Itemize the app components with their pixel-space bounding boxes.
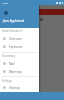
- button[interactable]: Mail: [0, 60, 39, 67]
- button[interactable]: Warnings: [0, 68, 39, 75]
- staticText: 12:30: [2, 1, 9, 4]
- staticText: Radio Standard 1: [2, 29, 23, 33]
- staticText: Jane Appleseed: [3, 19, 25, 23]
- staticText: Secondary: [2, 54, 15, 58]
- staticText: Overview: [9, 37, 22, 41]
- button[interactable]: Payments: [0, 43, 39, 50]
- staticText: Mail: [9, 62, 15, 66]
- button[interactable]: Overview: [0, 35, 39, 42]
- button[interactable]: Settings: [0, 84, 39, 91]
- staticText: Settings: [2, 79, 12, 83]
- staticText: Settings: [9, 86, 20, 90]
- staticText: Payments: [9, 45, 23, 49]
- staticText: Warnings: [9, 70, 22, 74]
